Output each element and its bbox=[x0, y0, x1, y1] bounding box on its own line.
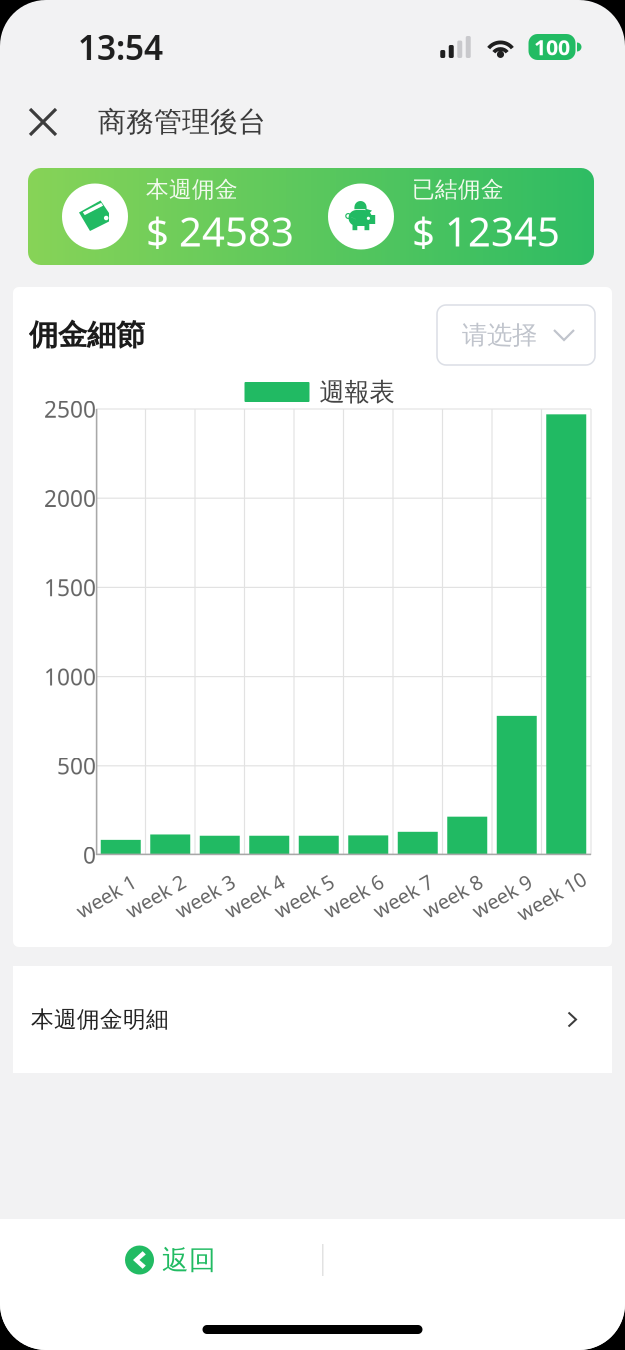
staticText: 已結佣金 bbox=[412, 175, 504, 203]
staticText: week 1 bbox=[73, 883, 138, 909]
button[interactable]: 本週佣金明細 bbox=[13, 966, 612, 1073]
staticText: week 7 bbox=[370, 883, 435, 909]
staticText: $ 24583 bbox=[146, 204, 294, 257]
staticText: 本週佣金 bbox=[146, 175, 238, 203]
staticText: week 2 bbox=[123, 883, 188, 909]
staticText: 0 bbox=[83, 840, 96, 870]
button[interactable]: 请选择 bbox=[437, 305, 595, 365]
staticText: 请选择 bbox=[462, 319, 537, 350]
button[interactable]: Close bbox=[12, 87, 74, 157]
staticText: week 4 bbox=[222, 883, 287, 909]
staticText: 本週佣金明細 bbox=[31, 1006, 169, 1033]
staticText: week 9 bbox=[469, 883, 534, 909]
staticText: 商務管理後台 bbox=[98, 105, 266, 139]
staticText: week 3 bbox=[172, 883, 237, 909]
staticText: week 10 bbox=[513, 883, 589, 909]
button[interactable]: 返回 bbox=[89, 1219, 252, 1301]
staticText: 500 bbox=[57, 751, 96, 781]
staticText: 佣金細節 bbox=[29, 317, 145, 353]
staticText: week 8 bbox=[420, 883, 485, 909]
staticText: 返回 bbox=[162, 1244, 216, 1276]
staticText: 13:54 bbox=[78, 25, 163, 69]
staticText: week 5 bbox=[271, 883, 336, 909]
staticText: 1500 bbox=[44, 572, 96, 602]
staticText: 100 bbox=[534, 33, 570, 61]
staticText: 2000 bbox=[44, 483, 96, 513]
staticText: 週報表 bbox=[319, 376, 394, 407]
staticText: 2500 bbox=[44, 394, 96, 424]
staticText: 1000 bbox=[44, 661, 96, 692]
staticText: $ 12345 bbox=[412, 204, 560, 257]
staticText: week 6 bbox=[321, 883, 386, 909]
